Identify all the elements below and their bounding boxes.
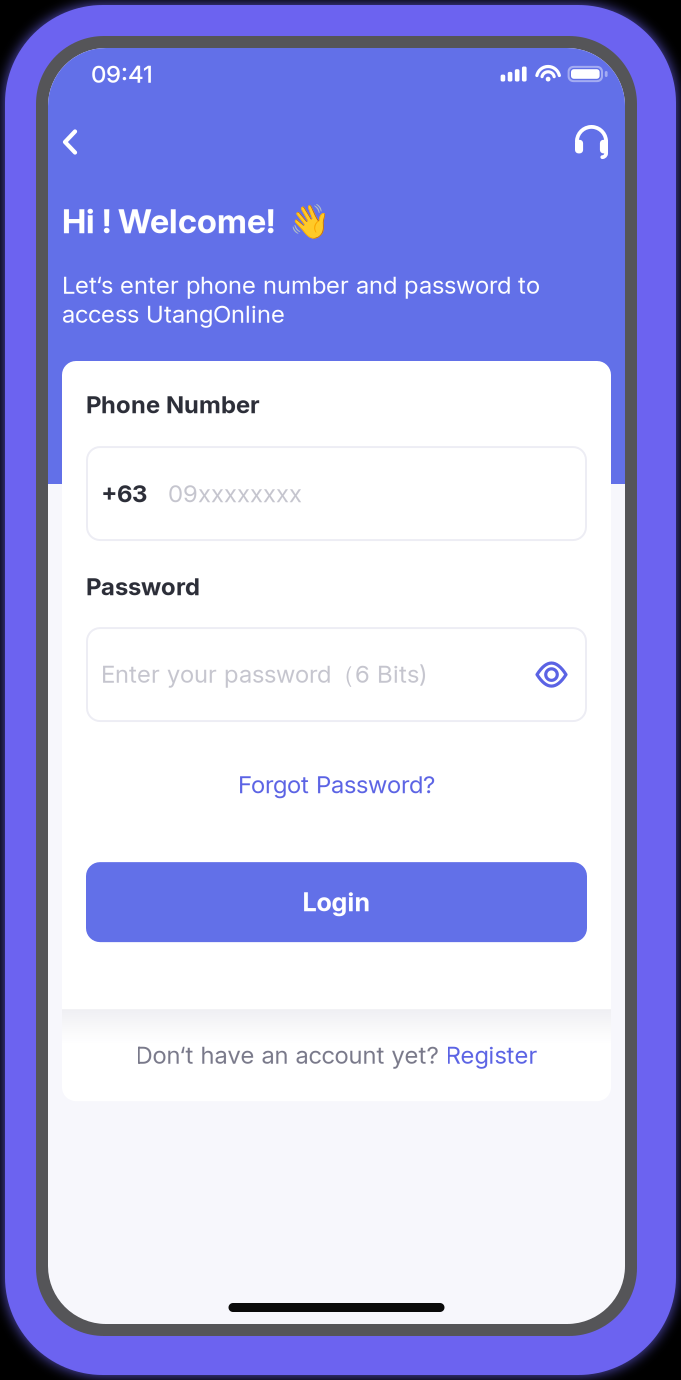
staticText: Don‘t have an account yet?	[135, 1041, 445, 1070]
staticText: Let‘s enter phone number and password to…	[62, 270, 540, 328]
staticText: Password	[86, 572, 200, 601]
button[interactable]: Register	[445, 1041, 537, 1070]
staticText: Enter your password（6 Bits)	[101, 659, 427, 690]
staticText: +63	[101, 479, 147, 508]
button[interactable]: Back	[48, 101, 101, 182]
staticText: 09xxxxxxxx	[168, 479, 302, 508]
staticText: 09:41	[91, 59, 153, 88]
staticText: Login	[302, 887, 370, 917]
staticText: Register	[445, 1041, 537, 1070]
staticText: Forgot Password?	[238, 770, 435, 799]
button[interactable]: Show password	[530, 652, 573, 698]
button[interactable]: Forgot Password?	[222, 759, 451, 810]
staticText: Phone Number	[86, 390, 260, 419]
staticText: Hi ! Welcome! 👋	[62, 201, 331, 241]
button[interactable]: Customer support	[553, 101, 625, 183]
button[interactable]: Login	[86, 862, 587, 942]
